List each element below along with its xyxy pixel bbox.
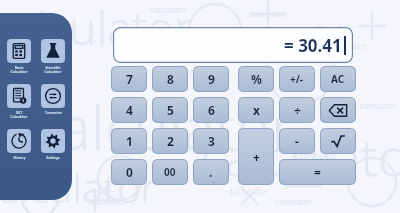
- staticText: calculator: [330, 40, 367, 51]
- button[interactable]: %: [238, 66, 274, 92]
- staticText: History: [13, 155, 26, 160]
- staticText: calculator: [200, 120, 400, 191]
- button[interactable]: 9: [193, 66, 229, 92]
- button[interactable]: 8: [152, 66, 188, 92]
- staticText: Settings: [46, 155, 60, 160]
- button[interactable]: Delete: [320, 97, 356, 123]
- button[interactable]: 5: [152, 97, 188, 123]
- staticText: GST Calculator: [10, 110, 28, 120]
- button[interactable]: AC: [320, 66, 356, 92]
- staticText: 00: [164, 165, 176, 179]
- staticText: calculator: [0, 160, 157, 213]
- staticText: 0: [126, 164, 133, 180]
- staticText: calculator: [150, 4, 187, 15]
- staticText: 2: [167, 133, 174, 149]
- button[interactable]: 6: [193, 97, 229, 123]
- staticText: calculator: [275, 196, 312, 207]
- staticText: calculator: [120, 26, 253, 67]
- staticText: calculator: [230, 186, 267, 197]
- button[interactable]: 3: [193, 128, 229, 154]
- button[interactable]: x: [238, 97, 274, 123]
- button[interactable]: Converter: [40, 84, 66, 115]
- staticText: x: [253, 102, 260, 118]
- staticText: +: [253, 149, 260, 165]
- staticText: 6: [208, 102, 215, 118]
- button[interactable]: History: [6, 129, 32, 160]
- staticText: Converter: [45, 110, 62, 115]
- staticText: .: [209, 164, 213, 180]
- staticText: calculator: [360, 100, 397, 111]
- staticText: 1: [126, 133, 133, 149]
- button[interactable]: +/-: [279, 66, 315, 92]
- staticText: calculator: [90, 196, 127, 207]
- staticText: 9: [208, 71, 215, 87]
- staticText: 5: [167, 102, 174, 118]
- staticText: calculator: [190, 66, 227, 77]
- button[interactable]: GST Calculator: [6, 84, 32, 120]
- button[interactable]: 0: [111, 159, 147, 185]
- staticText: calculator: [0, 0, 193, 59]
- staticText: calculator: [250, 8, 287, 19]
- staticText: %: [251, 71, 262, 87]
- staticText: = 30.41: [284, 34, 342, 57]
- staticText: 7: [126, 71, 133, 87]
- staticText: AC: [331, 72, 345, 86]
- button[interactable]: Scientific Calculator: [40, 39, 66, 75]
- staticText: +/-: [290, 72, 304, 86]
- staticText: ÷: [294, 102, 301, 118]
- staticText: Scientific Calculator: [44, 65, 62, 75]
- button[interactable]: 00: [152, 159, 188, 185]
- button[interactable]: ÷: [279, 97, 315, 123]
- staticText: calculator: [300, 150, 337, 161]
- staticText: -: [295, 133, 299, 149]
- button[interactable]: = 30.41: [113, 27, 353, 63]
- staticText: 4: [126, 102, 133, 118]
- button[interactable]: -: [279, 128, 315, 154]
- staticText: 3: [208, 133, 215, 149]
- staticText: Basic Calculator: [10, 65, 28, 75]
- staticText: calculator: [30, 86, 295, 168]
- button[interactable]: +: [238, 128, 274, 185]
- button[interactable]: Square root: [320, 128, 356, 154]
- button[interactable]: Basic Calculator: [6, 39, 32, 75]
- staticText: =: [314, 164, 321, 180]
- button[interactable]: 4: [111, 97, 147, 123]
- button[interactable]: 7: [111, 66, 147, 92]
- button[interactable]: 2: [152, 128, 188, 154]
- button[interactable]: 1: [111, 128, 147, 154]
- button[interactable]: Settings: [40, 129, 66, 160]
- button[interactable]: =: [279, 159, 356, 185]
- staticText: 8: [167, 71, 174, 87]
- button[interactable]: .: [193, 159, 229, 185]
